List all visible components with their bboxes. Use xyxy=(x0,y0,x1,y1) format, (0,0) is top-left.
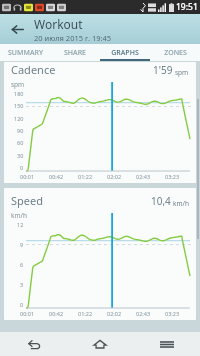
button[interactable]: Speed xyxy=(4,188,196,320)
staticText: Speed xyxy=(11,193,43,208)
staticText: 00:42 xyxy=(49,173,64,180)
button[interactable]: GRAPHS xyxy=(100,44,150,61)
staticText: 03:23 xyxy=(165,173,180,180)
staticText: km/h xyxy=(173,199,189,208)
staticText: ZONES xyxy=(164,48,187,58)
button[interactable]: Home xyxy=(66,332,133,356)
staticText: 6 xyxy=(20,261,24,268)
staticText: km/h xyxy=(11,211,27,220)
staticText: 1'59 xyxy=(153,63,173,77)
staticText: 9 xyxy=(20,241,24,248)
button[interactable]: SHARE xyxy=(50,44,100,61)
button[interactable]: ZONES xyxy=(150,44,200,61)
staticText: 00:01 xyxy=(20,173,35,180)
button[interactable]: Back xyxy=(0,332,66,356)
staticText: 0 xyxy=(20,164,24,171)
button[interactable]: Cadence xyxy=(4,62,196,183)
staticText: 00:01 xyxy=(20,310,35,317)
staticText: 02:43 xyxy=(136,310,151,317)
staticText: 90 xyxy=(17,127,24,134)
staticText: Workout xyxy=(34,16,83,32)
staticText: 03:23 xyxy=(165,310,180,317)
staticText: 12 xyxy=(17,221,24,228)
staticText: 00:42 xyxy=(49,310,64,317)
button[interactable]: Recent apps xyxy=(133,332,200,356)
staticText: GRAPHS xyxy=(111,48,139,58)
staticText: 10,4 xyxy=(151,194,171,208)
staticText: 01:22 xyxy=(78,310,93,317)
staticText: Cadence xyxy=(11,62,56,77)
staticText: 60 xyxy=(17,139,24,146)
button[interactable]: Back xyxy=(0,14,34,44)
staticText: 150 xyxy=(14,102,24,109)
staticText: 01:22 xyxy=(78,173,93,180)
staticText: SHARE xyxy=(64,48,86,58)
staticText: spm xyxy=(11,80,25,89)
staticText: 3 xyxy=(20,281,24,288)
button[interactable]: SUMMARY xyxy=(0,44,50,61)
staticText: 19:51 xyxy=(176,1,198,13)
staticText: 02:43 xyxy=(136,173,151,180)
staticText: 02:02 xyxy=(107,173,122,180)
staticText: 120 xyxy=(14,115,24,122)
staticText: 180 xyxy=(14,90,24,97)
staticText: 20 июля 2015 г. 19:45 xyxy=(34,33,112,43)
staticText: 30 xyxy=(17,152,24,159)
staticText: spm xyxy=(175,68,189,77)
staticText: 02:02 xyxy=(107,310,122,317)
staticText: SUMMARY xyxy=(8,48,43,58)
staticText: 0 xyxy=(20,301,24,308)
